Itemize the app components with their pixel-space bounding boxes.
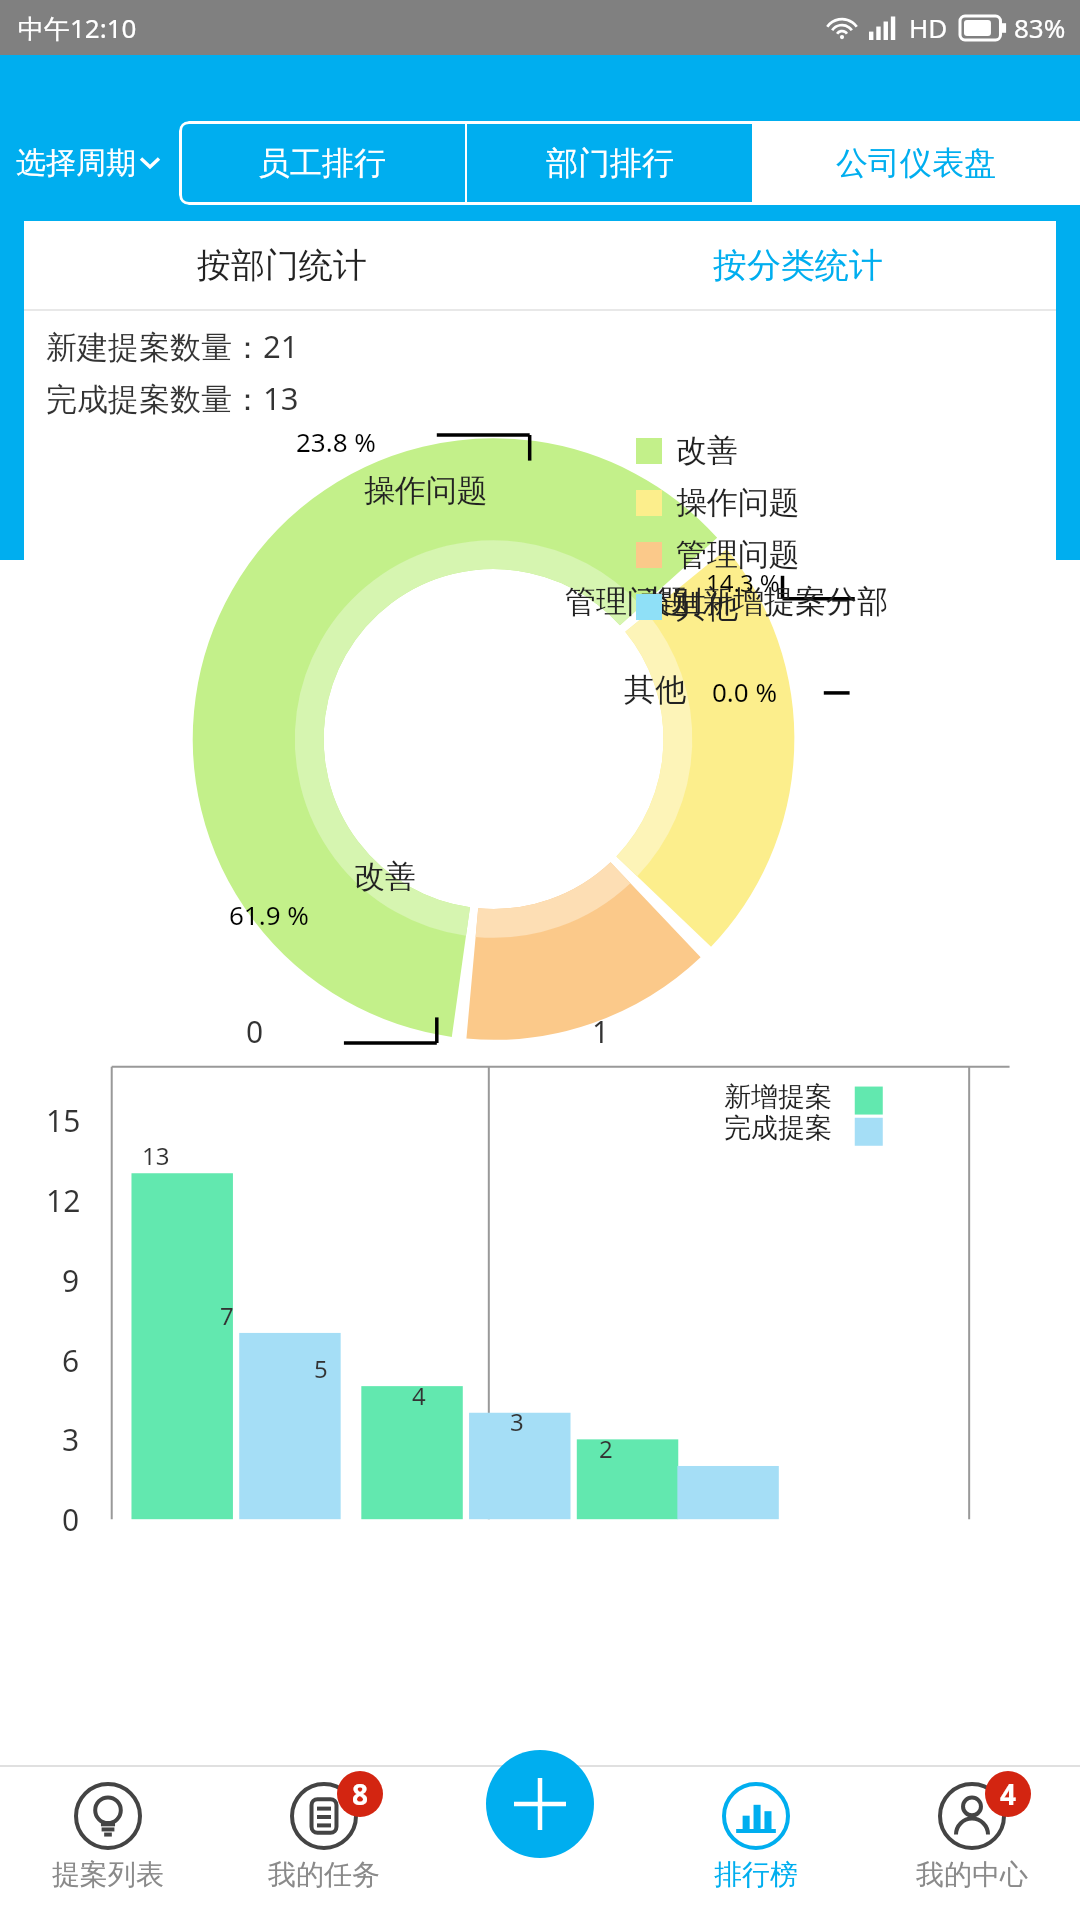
staticText: 操作问题 [676,483,800,522]
staticText: 部门排行 [546,143,674,183]
staticText: 7 [220,1299,234,1332]
button[interactable]: 4 [864,1765,1080,1920]
staticText: 管理问题 [565,582,689,621]
staticText: 9 [62,1260,80,1301]
staticText: 管理问题 [676,535,800,574]
staticText: 新建提案数量：21 [46,325,299,367]
staticText: 我的中心 [916,1857,1028,1892]
button[interactable]: 提案列表 [0,1765,216,1920]
staticText: 选择周期 [16,144,136,182]
staticText: 0.0 % [712,674,778,709]
staticText: 新增提案 [724,1080,832,1114]
staticText: 按分类统计 [713,244,883,287]
staticText: 其他 [624,670,686,709]
button[interactable]: 选择周期 [0,136,167,190]
staticText: 12 [46,1180,81,1221]
staticText: 中午12:10 [18,10,137,46]
staticText: 3 [62,1419,80,1460]
staticText: 15 [46,1100,81,1141]
staticText: 完成提案数量：13 [46,377,299,419]
staticText: 2 [599,1432,613,1465]
staticText: 按部门统计 [197,244,367,287]
button[interactable]: 按分类统计 [540,221,1056,309]
staticText: 0 [246,1011,264,1052]
staticText: 5 [314,1352,328,1385]
button[interactable]: 员工排行 [179,121,465,205]
staticText: 61.9 % [229,897,309,932]
button[interactable]: 部门排行 [467,121,752,205]
staticText: 员工排行 [258,143,386,183]
staticText: HD [909,10,948,45]
staticText: 14.3 % [706,566,780,599]
staticText: 公司仪表盘 [836,143,996,183]
staticText: 4 [412,1379,426,1412]
button[interactable]: 公司仪表盘 [752,121,1080,205]
staticText: 改善 [676,431,738,470]
button[interactable]: 排行榜 [648,1765,864,1920]
staticText: 完成提案 [724,1111,832,1145]
staticText: 6 [62,1340,80,1381]
button[interactable]: 新建 [486,1750,594,1858]
staticText: 0 [62,1499,80,1540]
staticText: 排行榜 [714,1857,798,1892]
staticText: 提案列表 [52,1857,164,1892]
staticText: 4 [1000,1775,1017,1813]
staticText: 改善 [354,857,416,896]
staticText: 其他 [676,587,738,626]
staticText: 1 [592,1011,610,1052]
staticText: 操作问题 [364,471,488,510]
staticText: 3 [510,1405,524,1438]
button[interactable]: 8 [216,1765,432,1920]
staticText: 83% [1014,10,1066,45]
staticText: 类别新增提案分部 [640,582,888,621]
button[interactable]: 按部门统计 [24,221,540,309]
staticText: 23.8 % [296,424,376,459]
staticText: 我的任务 [268,1857,380,1892]
staticText: 8 [352,1775,369,1813]
staticText: 13 [142,1139,170,1172]
